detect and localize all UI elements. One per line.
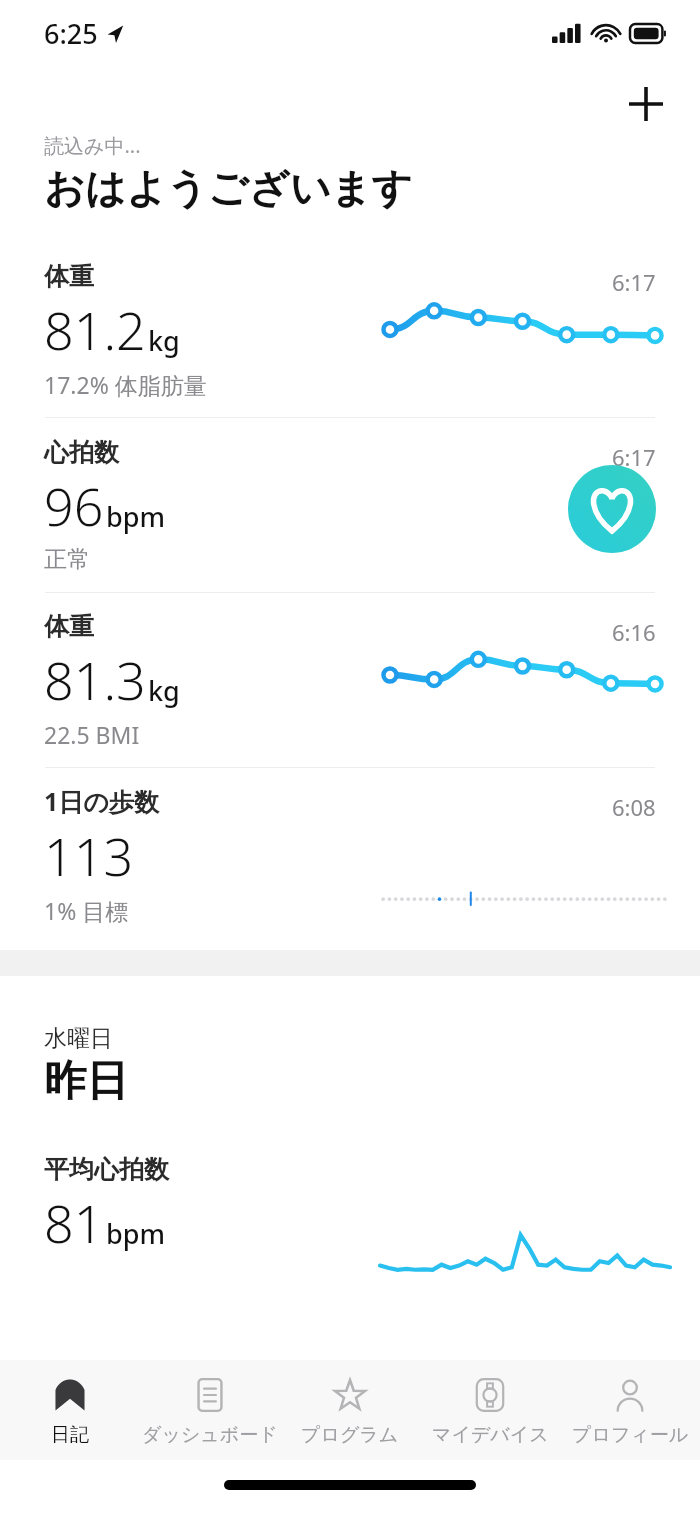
staticText: kg xyxy=(148,322,180,359)
button[interactable]: マイデバイス xyxy=(420,1360,560,1460)
button[interactable]: 心拍数 xyxy=(0,418,700,592)
staticText: 昨日 xyxy=(44,1055,128,1108)
staticText: 水曜日 xyxy=(44,1024,113,1053)
staticText: 6:17 xyxy=(612,267,656,297)
staticText: 平均心拍数 xyxy=(44,1154,169,1185)
staticText: 6:08 xyxy=(612,792,656,822)
staticText: プロフィール xyxy=(572,1423,689,1447)
staticText: 1% 目標 xyxy=(44,895,129,926)
staticText: 1日の歩数 xyxy=(44,784,159,818)
staticText: bpm xyxy=(106,1215,166,1252)
button[interactable]: 平均心拍数 xyxy=(0,1154,700,1274)
staticText: マイデバイス xyxy=(432,1423,549,1447)
staticText: ダッシュボード xyxy=(142,1423,278,1447)
button[interactable]: プロフィール xyxy=(560,1360,700,1460)
staticText: 6:16 xyxy=(612,617,656,647)
button[interactable]: Heart rate xyxy=(568,465,656,553)
staticText: 日記 xyxy=(51,1423,89,1447)
button[interactable]: 1日の歩数 xyxy=(0,768,700,942)
button[interactable]: ダッシュボード xyxy=(140,1360,280,1460)
button[interactable]: 日記 xyxy=(0,1360,140,1460)
staticText: 17.2% 体脂肪量 xyxy=(44,369,207,400)
staticText: 22.5 BMI xyxy=(44,719,140,750)
button[interactable]: 体重 xyxy=(0,593,700,767)
staticText: 81.3 xyxy=(44,644,146,715)
staticText: bpm xyxy=(106,498,166,535)
staticText: 読込み中... xyxy=(44,132,141,159)
button[interactable]: 体重 xyxy=(0,243,700,417)
staticText: 心拍数 xyxy=(44,437,119,468)
staticText: 96 xyxy=(44,470,104,541)
staticText: kg xyxy=(148,672,180,709)
button[interactable]: プログラム xyxy=(280,1360,420,1460)
button[interactable]: Add xyxy=(620,78,672,130)
staticText: おはようございます xyxy=(44,163,413,213)
staticText: 体重 xyxy=(44,261,94,292)
staticText: プログラム xyxy=(301,1423,399,1447)
staticText: 6:25 xyxy=(44,15,98,52)
staticText: 81.2 xyxy=(44,294,146,365)
staticText: 113 xyxy=(44,820,134,891)
staticText: 体重 xyxy=(44,611,94,642)
staticText: 81 xyxy=(44,1187,104,1258)
staticText: 6:17 xyxy=(612,442,656,472)
staticText: 正常 xyxy=(44,545,90,574)
